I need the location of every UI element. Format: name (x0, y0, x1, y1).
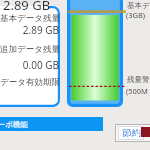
staticText: (3GB) (126, 10, 146, 20)
staticText: 基本デ (127, 1, 150, 10)
staticText: 節約 (122, 127, 141, 139)
staticText: ターボ機能 (0, 120, 28, 129)
staticText: 0.00 GB (0, 58, 59, 72)
staticText: 残量警 (127, 75, 150, 84)
staticText: (500M (126, 86, 148, 96)
button[interactable] (0, 6, 60, 107)
staticText: 2.89 GB (3, 0, 51, 14)
staticText: 2.89 GB (0, 23, 59, 37)
button[interactable]: 節約 (118, 126, 144, 140)
staticText: 追加データ有効期限 (0, 77, 60, 88)
staticText: 基本データ残量 (0, 13, 60, 24)
staticText: 追加データ残量 (0, 44, 60, 55)
button[interactable]: ターボ機能 (0, 117, 103, 131)
